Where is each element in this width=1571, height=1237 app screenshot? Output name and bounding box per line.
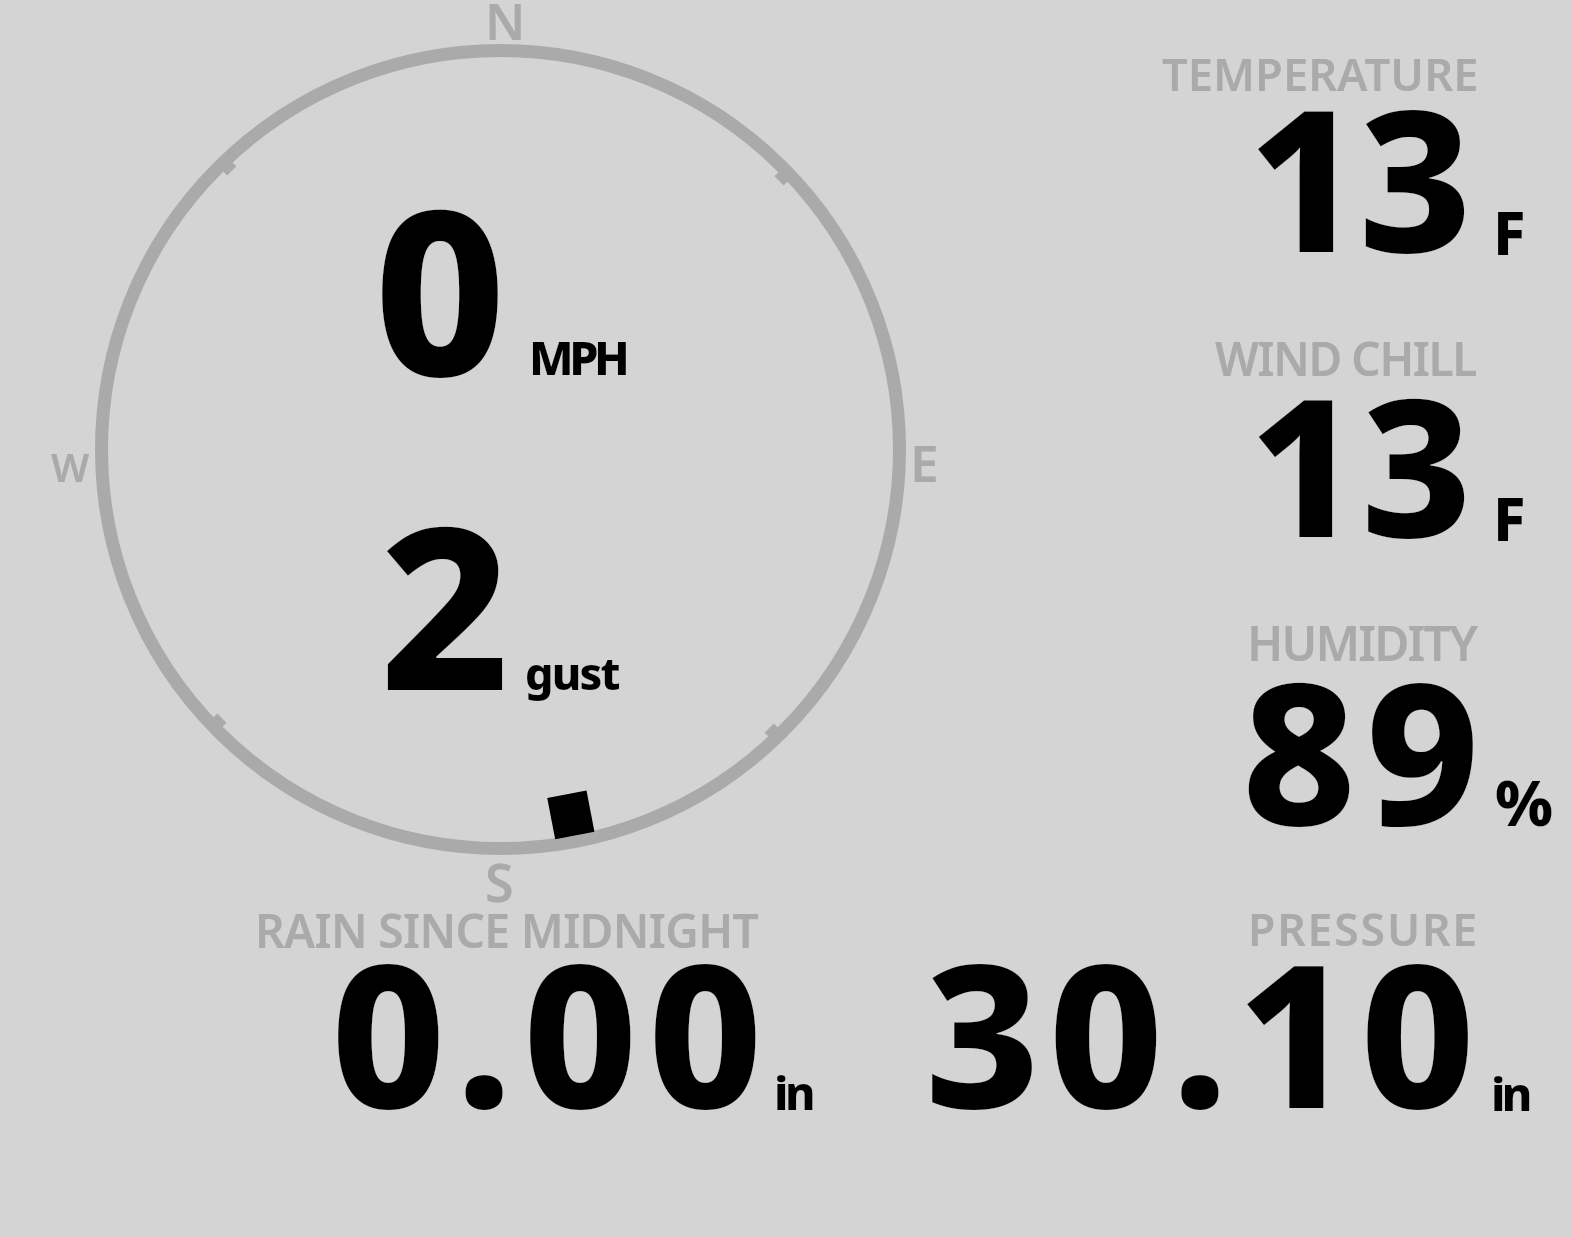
- button[interactable]: Pressure 30.10 inches of mercury: [925, 908, 1535, 1113]
- staticText: 0: [374, 132, 506, 443]
- button[interactable]: Rain since midnight 0.00 inches: [252, 908, 817, 1113]
- staticText: PRESSURE: [1248, 898, 1480, 959]
- staticText: N: [485, 0, 526, 55]
- staticText: WIND CHILL: [1215, 327, 1477, 390]
- button[interactable]: Wind gust 2 miles per hour: [360, 512, 640, 707]
- staticText: 13: [1248, 43, 1470, 310]
- button[interactable]: Humidity 89 percent: [1150, 620, 1560, 830]
- staticText: 89: [1242, 614, 1490, 883]
- staticText: HUMIDITY: [1247, 610, 1477, 675]
- staticText: TEMPERATURE: [1162, 43, 1479, 104]
- staticText: S: [485, 846, 514, 917]
- button[interactable]: Wind chill 13 degrees Fahrenheit: [1150, 335, 1560, 545]
- staticText: %: [1495, 759, 1554, 845]
- staticText: MPH: [529, 325, 626, 389]
- staticText: 0.00: [331, 896, 774, 1166]
- staticText: RAIN SINCE MIDNIGHT: [255, 899, 759, 962]
- staticText: F: [1493, 191, 1526, 273]
- staticText: F: [1493, 477, 1526, 559]
- button[interactable]: Temperature 13 degrees Fahrenheit: [1150, 50, 1560, 260]
- staticText: gust: [525, 642, 619, 703]
- button[interactable]: Wind direction south south-east: [90, 39, 911, 860]
- staticText: 2: [380, 450, 510, 756]
- staticText: W: [51, 439, 90, 494]
- staticText: in: [774, 1060, 812, 1123]
- staticText: 30.10: [925, 896, 1484, 1167]
- staticText: in: [1491, 1061, 1529, 1124]
- staticText: E: [910, 427, 939, 497]
- button[interactable]: Wind speed 0 miles per hour: [360, 195, 640, 390]
- staticText: 13: [1249, 333, 1474, 594]
